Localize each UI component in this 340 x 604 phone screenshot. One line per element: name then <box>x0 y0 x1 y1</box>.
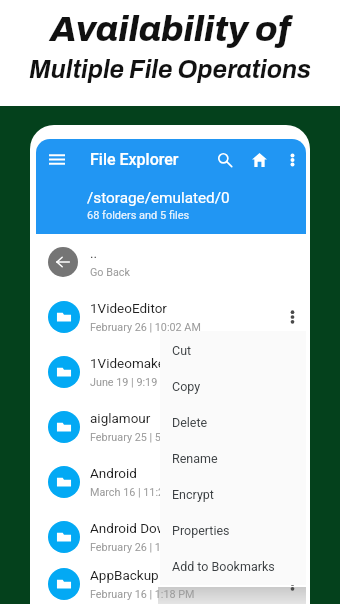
staticText: Multiple File Operations <box>0 56 340 83</box>
button[interactable]: Menu <box>36 139 78 180</box>
staticText: February 26 | 10:02 AM <box>90 321 201 334</box>
button[interactable]: Cut <box>160 332 306 368</box>
button[interactable]: .. <box>36 234 306 289</box>
button[interactable]: AppBackup <box>36 564 306 604</box>
button[interactable]: Delete <box>160 404 306 440</box>
staticText: 68 folders and 5 files <box>87 209 190 222</box>
button[interactable]: 1Videomaker <box>36 344 306 399</box>
staticText: Encrypt <box>172 487 214 502</box>
staticText: Availability of <box>0 10 340 49</box>
staticText: /storage/emulated/0 <box>87 189 230 207</box>
staticText: March 16 | 11:20 AM <box>90 486 190 499</box>
button[interactable]: Home <box>241 139 278 180</box>
staticText: Go Back <box>90 266 130 279</box>
staticText: 1VideoEditor <box>90 300 167 316</box>
staticText: AppBackup <box>90 567 159 583</box>
button[interactable]: More options <box>279 564 306 604</box>
button[interactable]: Rename <box>160 440 306 476</box>
button[interactable]: aiglamour <box>36 399 306 454</box>
staticText: Delete <box>172 415 208 430</box>
button[interactable]: Android Download <box>36 509 306 564</box>
button[interactable]: Properties <box>160 512 306 548</box>
staticText: Copy <box>172 379 201 394</box>
staticText: Android <box>90 465 137 481</box>
button[interactable]: Android <box>36 454 306 509</box>
staticText: Properties <box>172 523 230 538</box>
staticText: File Explorer <box>90 150 179 169</box>
button[interactable]: 1VideoEditor <box>36 289 306 344</box>
button[interactable]: Add to Bookmarks <box>160 548 306 584</box>
button[interactable]: Encrypt <box>160 476 306 512</box>
staticText: Rename <box>172 451 218 466</box>
button[interactable]: Search <box>209 139 241 180</box>
staticText: Cut <box>172 343 192 358</box>
staticText: Add to Bookmarks <box>172 559 275 574</box>
staticText: .. <box>90 245 98 261</box>
button[interactable]: More options <box>279 297 306 337</box>
staticText: February 16 | 1:18 PM <box>90 588 195 601</box>
button[interactable]: More options <box>278 139 306 180</box>
staticText: Android Download <box>90 520 201 536</box>
staticText: February 25 | 5:53 PM <box>90 431 195 444</box>
staticText: aiglamour <box>90 410 151 426</box>
staticText: 1Videomaker <box>90 355 170 371</box>
staticText: February 26 | 10:02 AM <box>90 541 201 554</box>
staticText: June 19 | 9:19 PM <box>90 376 177 389</box>
button[interactable]: Copy <box>160 368 306 404</box>
